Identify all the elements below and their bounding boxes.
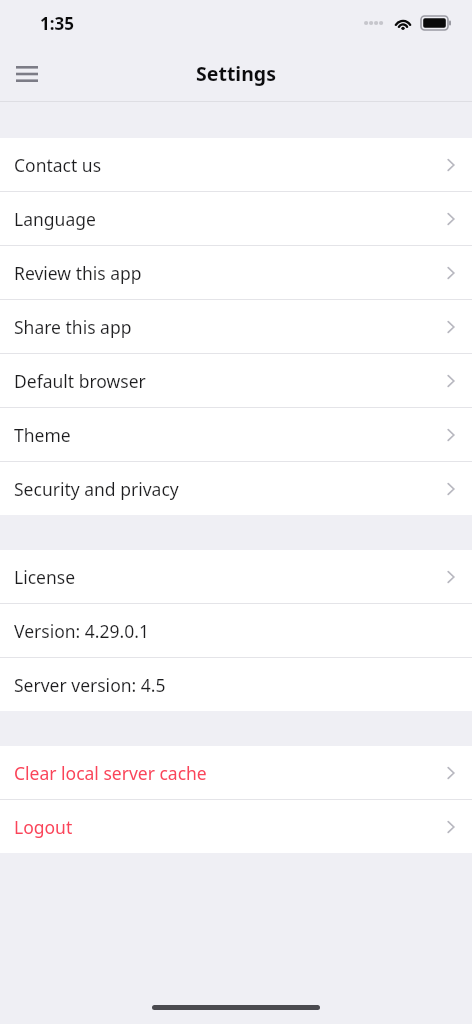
staticText: Contact us [14,153,446,177]
staticText: Share this app [14,315,446,339]
button[interactable]: Theme [0,408,472,461]
staticText: 1:35 [40,12,74,35]
button[interactable]: Language [0,192,472,245]
button[interactable]: Version: 4.29.0.1 [0,604,472,657]
button[interactable]: License [0,550,472,603]
staticText: Server version: 4.5 [14,673,456,697]
staticText: Review this app [14,261,446,285]
staticText: Clear local server cache [14,761,446,785]
staticText: Theme [14,423,446,447]
button[interactable]: Contact us [0,138,472,191]
staticText: License [14,565,446,589]
button[interactable]: Share this app [0,300,472,353]
button[interactable]: Security and privacy [0,462,472,515]
staticText: Logout [14,815,446,839]
button[interactable]: Review this app [0,246,472,299]
staticText: Security and privacy [14,477,446,501]
staticText: Default browser [14,369,446,393]
button[interactable]: Default browser [0,354,472,407]
staticText: Version: 4.29.0.1 [14,619,456,643]
staticText: Settings [196,60,276,87]
button[interactable]: Clear local server cache [0,746,472,799]
staticText: Language [14,207,446,231]
button[interactable]: Server version: 4.5 [0,658,472,711]
button[interactable]: Logout [0,800,472,853]
button[interactable]: Menu [0,47,54,101]
